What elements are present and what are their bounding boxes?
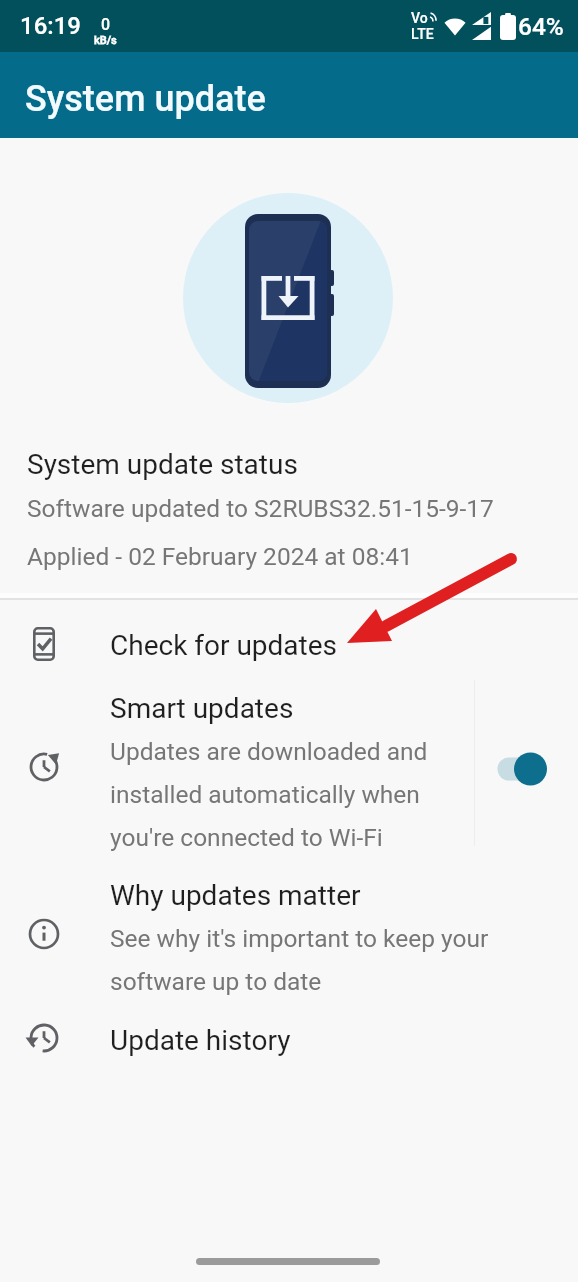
staticText: Vo (411, 10, 428, 26)
staticText: 16:19 (20, 12, 81, 40)
staticText: Updates are downloaded and installed aut… (110, 737, 428, 852)
staticText: LTE (411, 26, 434, 42)
button[interactable]: Smart updates toggle (493, 735, 559, 803)
button[interactable]: Update history (0, 995, 578, 1083)
staticText: Why updates matter (110, 879, 361, 912)
staticText: Software updated to S2RUBS32.51-15-9-17 (27, 494, 494, 523)
button[interactable]: Why updates matter (0, 865, 578, 995)
staticText: Update history (110, 1024, 291, 1057)
staticText: 0 (101, 15, 111, 34)
staticText: 64% (518, 12, 564, 41)
staticText: Applied - 02 February 2024 at 08:41 (27, 542, 413, 571)
staticText: System update status (27, 448, 298, 481)
button[interactable]: Check for updates (0, 599, 578, 689)
staticText: See why it's important to keep your soft… (110, 924, 489, 996)
staticText: Smart updates (110, 692, 294, 725)
staticText: kB/s (94, 34, 117, 47)
staticText: Check for updates (110, 629, 338, 662)
button[interactable]: Smart updates (0, 689, 578, 855)
staticText: System update (25, 78, 266, 120)
